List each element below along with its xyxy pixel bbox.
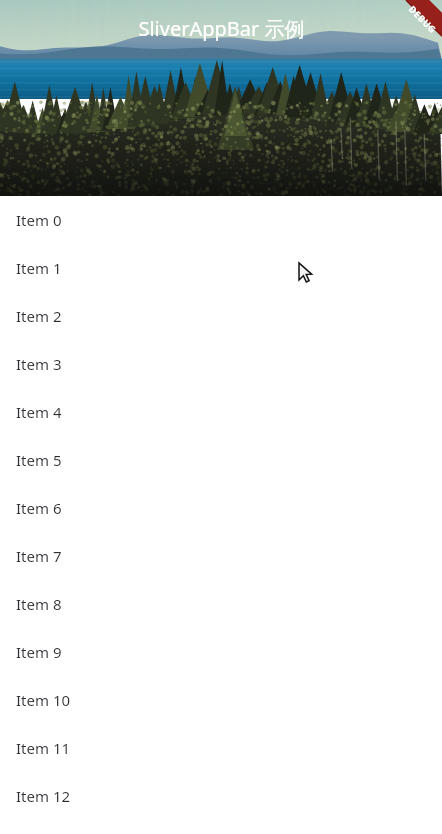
staticText: Item 8 xyxy=(16,594,62,614)
button[interactable]: Item 3 xyxy=(0,340,442,388)
staticText: Item 11 xyxy=(16,738,71,758)
staticText: Item 6 xyxy=(16,498,62,518)
button[interactable]: Item 1 xyxy=(0,244,442,292)
staticText: Item 2 xyxy=(16,306,62,326)
staticText: DEBUG xyxy=(407,3,439,35)
button[interactable]: Item 10 xyxy=(0,676,442,724)
staticText: Item 4 xyxy=(16,402,62,422)
button[interactable]: Item 9 xyxy=(0,628,442,676)
button[interactable]: Item 8 xyxy=(0,580,442,628)
staticText: Item 5 xyxy=(16,450,62,470)
button[interactable]: Item 12 xyxy=(0,772,442,820)
staticText: Item 3 xyxy=(16,354,62,374)
button[interactable]: Item 0 xyxy=(0,196,442,244)
staticText: SliverAppBar 示例 xyxy=(138,15,305,42)
button[interactable]: Item 5 xyxy=(0,436,442,484)
button[interactable]: Item 11 xyxy=(0,724,442,772)
staticText: Item 10 xyxy=(16,690,71,710)
other: DEBUG banner xyxy=(378,0,442,64)
staticText: Item 9 xyxy=(16,642,62,662)
staticText: Item 1 xyxy=(16,258,62,278)
staticText: Item 7 xyxy=(16,546,62,566)
staticText: Item 0 xyxy=(16,210,62,230)
button[interactable]: Item 2 xyxy=(0,292,442,340)
button[interactable]: Item 7 xyxy=(0,532,442,580)
button[interactable]: Item 6 xyxy=(0,484,442,532)
button[interactable]: Item 4 xyxy=(0,388,442,436)
staticText: Item 12 xyxy=(16,786,71,806)
